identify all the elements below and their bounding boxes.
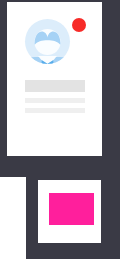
button[interactable] [7, 2, 102, 156]
button[interactable] [38, 180, 101, 243]
